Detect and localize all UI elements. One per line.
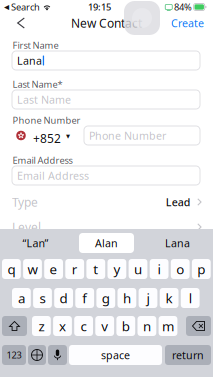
button[interactable]: e xyxy=(44,259,63,279)
staticText: a xyxy=(18,289,25,307)
staticText: ◀ xyxy=(4,3,9,11)
button[interactable]: Back xyxy=(6,12,36,34)
staticText: l xyxy=(189,289,192,307)
button[interactable]: Create xyxy=(171,12,213,34)
staticText: c xyxy=(81,317,87,335)
staticText: Lana xyxy=(17,53,42,68)
staticText: Email Address xyxy=(17,168,89,183)
staticText: space xyxy=(101,348,130,362)
staticText: 84% xyxy=(174,1,192,13)
staticText: Last Name* xyxy=(12,78,62,90)
button[interactable]: k xyxy=(160,288,178,308)
staticText: k xyxy=(166,289,173,307)
button[interactable]: r xyxy=(65,259,84,279)
staticText: e xyxy=(50,260,58,278)
staticText: ▾ xyxy=(66,131,70,141)
staticText: x xyxy=(59,317,66,335)
staticText: b xyxy=(122,317,130,335)
staticText: Create xyxy=(171,16,204,30)
button[interactable]: +852 xyxy=(12,126,82,145)
button[interactable]: h xyxy=(117,288,136,308)
staticText: Type xyxy=(12,194,38,210)
button[interactable]: Switch keyboard xyxy=(28,345,46,365)
button[interactable]: Level xyxy=(12,219,201,235)
staticText: Search xyxy=(11,1,40,13)
staticText: h xyxy=(123,289,131,307)
button[interactable]: b xyxy=(116,316,135,336)
staticText: f xyxy=(82,289,87,307)
staticText: q xyxy=(7,260,15,278)
staticText: Phone Number xyxy=(89,128,166,143)
button[interactable]: d xyxy=(54,288,73,308)
button[interactable]: p xyxy=(192,259,211,279)
staticText: z xyxy=(38,317,44,335)
staticText: Alan xyxy=(95,236,118,250)
button[interactable]: Dictate xyxy=(48,345,67,365)
staticText: 19:15 xyxy=(88,1,111,13)
staticText: u xyxy=(134,260,142,278)
staticText: s xyxy=(39,289,45,307)
button[interactable]: t xyxy=(86,259,105,279)
button[interactable]: space xyxy=(69,345,162,365)
staticText: Email Address xyxy=(12,154,72,166)
staticText: n xyxy=(143,317,151,335)
button[interactable]: f xyxy=(75,288,94,308)
button[interactable]: “Lan” xyxy=(0,232,71,254)
staticText: Last Name xyxy=(17,92,71,107)
button[interactable]: l xyxy=(181,288,200,308)
button[interactable]: w xyxy=(23,259,42,279)
button[interactable]: v xyxy=(95,316,114,336)
staticText: d xyxy=(60,289,68,307)
staticText: p xyxy=(197,260,205,278)
staticText: Phone Number xyxy=(12,114,80,126)
button[interactable]: Lana xyxy=(142,232,213,254)
staticText: i xyxy=(158,260,161,278)
button[interactable]: y xyxy=(107,259,126,279)
button[interactable]: n xyxy=(137,316,156,336)
staticText: Lana xyxy=(165,236,190,250)
staticText: 123 xyxy=(6,349,21,361)
button[interactable]: Shift xyxy=(2,316,27,336)
staticText: w xyxy=(27,260,37,278)
button[interactable]: x xyxy=(53,316,72,336)
button[interactable]: s xyxy=(33,288,52,308)
staticText: t xyxy=(93,260,98,278)
button[interactable]: i xyxy=(150,259,168,279)
button[interactable]: Alan xyxy=(71,232,142,254)
staticText: Lead xyxy=(166,195,191,209)
staticText: v xyxy=(101,317,108,335)
button[interactable]: o xyxy=(171,259,190,279)
button[interactable]: Type xyxy=(12,194,201,210)
staticText: j xyxy=(146,289,149,307)
button[interactable]: 123 xyxy=(2,345,26,365)
button[interactable]: g xyxy=(96,288,115,308)
staticText: +852 xyxy=(33,130,61,146)
button[interactable]: j xyxy=(139,288,157,308)
button[interactable]: return xyxy=(165,345,211,365)
staticText: New Contact xyxy=(71,15,142,31)
button[interactable]: u xyxy=(129,259,147,279)
staticText: First Name xyxy=(12,39,58,51)
button[interactable]: q xyxy=(2,259,21,279)
staticText: y xyxy=(113,260,120,278)
staticText: o xyxy=(176,260,184,278)
button[interactable]: a xyxy=(12,288,31,308)
staticText: m xyxy=(162,317,174,335)
staticText: “Lan” xyxy=(22,236,48,250)
button[interactable]: c xyxy=(74,316,93,336)
staticText: g xyxy=(102,289,110,307)
button[interactable]: m xyxy=(159,316,177,336)
staticText: r xyxy=(72,260,78,278)
staticText: return xyxy=(172,348,204,362)
staticText: Level xyxy=(12,219,41,235)
button[interactable]: z xyxy=(32,316,51,336)
button[interactable]: Delete xyxy=(186,316,211,336)
